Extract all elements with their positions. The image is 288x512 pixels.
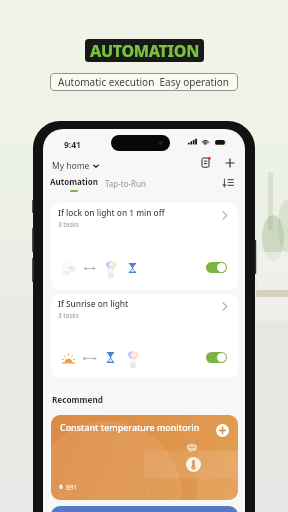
button[interactable]: Tap-to-Run [102,176,149,191]
button[interactable]: Add recommendation [216,424,229,437]
button[interactable]: Add [225,158,235,168]
staticText: If Sunrise on light [58,298,129,309]
other: Open [222,302,228,311]
button[interactable]: Temperature [186,457,201,472]
staticText: 3 tasks [58,311,79,320]
button[interactable]: Constant temperature monitorin [51,415,238,500]
button[interactable] [51,506,238,512]
staticText: Constant temperature monitorin [60,421,200,433]
staticText: AUTOMATION [90,40,199,62]
staticText: Tap-to-Run [105,178,146,189]
button[interactable]: Automation [47,174,101,194]
staticText: My home [52,160,90,172]
other: Open [222,211,228,220]
button[interactable]: If Sunrise on light [51,294,238,378]
button[interactable]: Toggle automation [206,352,227,363]
button[interactable]: Toggle automation [206,262,227,273]
staticText: If lock on light on 1 min off [58,207,165,218]
staticText: Automatic execution Easy operation [58,75,230,89]
staticText: Automation [50,176,98,187]
button[interactable]: Scene notes [201,157,212,168]
staticText: 891 [66,483,78,492]
button[interactable]: Sort [223,177,234,188]
staticText: Recommend [52,394,103,405]
button[interactable]: If lock on light on 1 min off [51,203,238,290]
staticText: 9:41 [64,139,81,151]
staticText: 3 tasks [58,220,79,229]
button[interactable]: My home [49,158,102,174]
